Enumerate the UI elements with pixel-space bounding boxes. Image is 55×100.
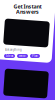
staticText: Plan <box>32 54 38 58</box>
button[interactable]: Write <box>17 54 28 58</box>
staticText: Get Instant <box>13 3 41 10</box>
staticText: Ask anything <box>5 48 22 51</box>
button[interactable]: Ideas <box>4 54 15 58</box>
button[interactable]: Plan <box>30 54 40 58</box>
staticText: Write <box>19 54 26 58</box>
staticText: Answers <box>16 8 39 15</box>
staticText: Ideas <box>6 54 13 58</box>
